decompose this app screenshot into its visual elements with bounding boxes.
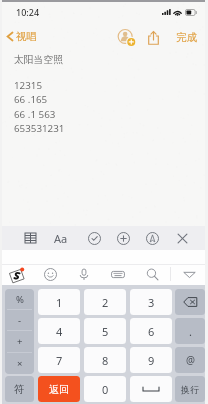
button[interactable]: 换行 <box>175 376 205 402</box>
button[interactable]: Table <box>18 226 42 250</box>
staticText: 66 .1 563 <box>14 108 56 121</box>
button[interactable]: Search <box>137 264 167 285</box>
button[interactable]: . <box>175 318 205 344</box>
button[interactable]: Delete <box>175 289 205 315</box>
button[interactable]: Share <box>141 25 165 49</box>
staticText: 完成 <box>176 31 197 44</box>
button[interactable]: 8 <box>84 347 126 373</box>
button[interactable]: Add person <box>114 25 138 49</box>
staticText: % <box>16 293 24 306</box>
staticText: 4 <box>56 324 63 339</box>
button[interactable]: Space <box>130 376 172 402</box>
staticText: 5 <box>102 324 109 339</box>
staticText: 8 <box>102 353 109 368</box>
button[interactable]: Add attachment <box>111 226 135 250</box>
staticText: - <box>18 314 22 327</box>
button[interactable]: Close <box>170 226 194 250</box>
staticText: 3 <box>148 295 155 310</box>
staticText: 12315 <box>14 79 43 92</box>
staticText: + <box>17 335 23 348</box>
staticText: 6 <box>148 324 155 339</box>
staticText: 9 <box>148 353 155 368</box>
other: Space <box>143 387 159 392</box>
button[interactable]: Checklist <box>82 226 106 250</box>
staticText: 10:24 <box>16 6 40 18</box>
button[interactable]: + <box>5 331 34 352</box>
button[interactable]: 返回 <box>38 376 80 402</box>
button[interactable]: Markup <box>140 226 164 250</box>
staticText: 返回 <box>49 383 69 396</box>
staticText: 换行 <box>181 384 199 395</box>
staticText: . <box>189 324 192 339</box>
button[interactable]: 完成 <box>170 26 202 48</box>
button[interactable]: 1 <box>38 289 80 315</box>
staticText: 0 <box>102 382 109 397</box>
other: Delete <box>183 297 198 307</box>
button[interactable]: Aa <box>49 226 73 250</box>
staticText: 7 <box>56 353 63 368</box>
staticText: 2 <box>102 295 109 310</box>
staticText: 符 <box>14 383 25 396</box>
staticText: 653531231 <box>14 122 65 135</box>
button[interactable]: 6 <box>130 318 172 344</box>
button[interactable]: % <box>5 289 34 309</box>
button[interactable]: 符 <box>5 376 34 402</box>
button[interactable]: 5 <box>84 318 126 344</box>
button[interactable]: - <box>5 310 34 330</box>
button[interactable]: Voice input <box>69 264 99 285</box>
button[interactable]: 3 <box>130 289 172 315</box>
staticText: @ <box>186 353 195 367</box>
button[interactable]: 0 <box>84 376 126 402</box>
button[interactable]: 视唱 <box>4 25 46 47</box>
button[interactable]: × <box>5 353 34 374</box>
staticText: 视唱 <box>16 30 37 43</box>
button[interactable]: 7 <box>38 347 80 373</box>
button[interactable]: @ <box>175 347 205 373</box>
button[interactable]: Hide keyboard <box>174 264 204 285</box>
button[interactable]: Emoji <box>35 264 65 285</box>
button[interactable]: Sogou input <box>1 264 31 285</box>
button[interactable]: 9 <box>130 347 172 373</box>
staticText: Aa <box>54 231 68 246</box>
staticText: 1 <box>56 295 63 310</box>
button[interactable]: 2 <box>84 289 126 315</box>
staticText: 66 .165 <box>14 93 48 106</box>
staticText: 太阳当空照 <box>14 54 63 66</box>
button[interactable]: 4 <box>38 318 80 344</box>
staticText: × <box>17 357 23 370</box>
button[interactable]: Keyboard <box>103 264 133 285</box>
